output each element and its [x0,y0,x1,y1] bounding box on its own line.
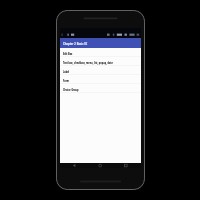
staticText: Edit Box [63,52,72,56]
staticText: Choice Group [63,88,79,92]
staticText: Label [63,70,69,74]
staticText: Label [63,70,69,74]
other: Navigation bar [60,163,141,168]
staticText: Form [63,79,69,83]
staticText: Text box, checkbox, menu, list, popup, d… [63,61,113,65]
staticText: Form [63,79,69,83]
staticText: Text box, checkbox, menu, list, popup, d… [63,61,113,65]
staticText: Chapter 2 Basic UI [63,41,87,46]
staticText: Edit Box [63,52,72,56]
button[interactable]: Text box, checkbox, menu, list, popup, d… [60,57,141,66]
button[interactable]: Form [60,75,141,84]
button[interactable]: Chapter 2 Basic UI [60,38,141,48]
staticText: Choice Group [63,88,79,92]
button[interactable]: Choice Group [60,84,141,93]
button[interactable]: Label [60,66,141,75]
button[interactable]: Edit Box [60,48,141,57]
